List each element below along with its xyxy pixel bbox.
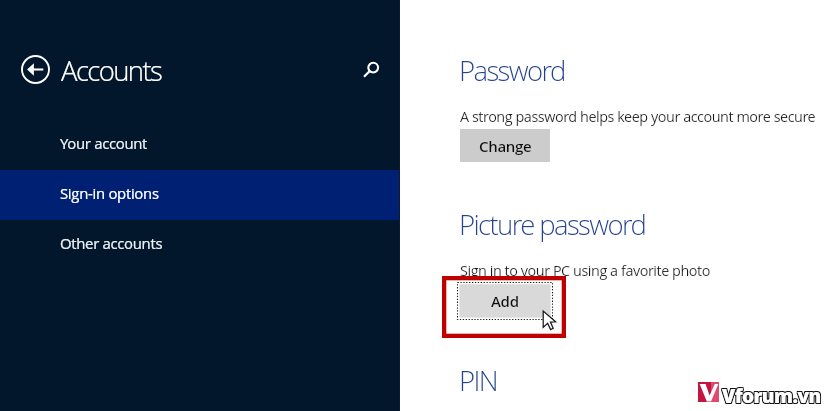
- staticText: Add: [491, 291, 519, 311]
- staticText: A strong password helps keep your accoun…: [460, 107, 816, 127]
- staticText: Vforum.vn: [723, 384, 822, 410]
- staticText: Vforum.vn: [721, 382, 820, 408]
- button[interactable]: Search: [361, 56, 385, 80]
- staticText: Vforum.vn: [722, 382, 821, 408]
- staticText: Other accounts: [60, 233, 163, 253]
- staticText: Sign in to your PC using a favorite phot…: [460, 261, 710, 281]
- staticText: Vforum.vn: [722, 383, 821, 409]
- staticText: Vforum.vn: [721, 383, 820, 409]
- button[interactable]: Change: [460, 129, 550, 162]
- button[interactable]: Your account: [0, 120, 400, 170]
- staticText: Sign-in options: [60, 183, 159, 203]
- staticText: Vforum.vn: [721, 384, 820, 410]
- button[interactable]: Add: [457, 282, 553, 320]
- button[interactable]: Sign-in options: [0, 170, 400, 220]
- staticText: Change: [479, 136, 532, 156]
- staticText: Vforum.vn: [722, 384, 821, 410]
- staticText: Picture password: [459, 206, 646, 243]
- staticText: Accounts: [61, 52, 162, 89]
- staticText: Vforum.vn: [723, 382, 822, 408]
- staticText: PIN: [459, 362, 497, 399]
- staticText: Vforum.vn: [723, 383, 822, 409]
- staticText: Your account: [60, 133, 148, 153]
- button[interactable]: Back: [21, 55, 50, 84]
- staticText: Password: [459, 52, 565, 89]
- button[interactable]: Other accounts: [0, 220, 400, 270]
